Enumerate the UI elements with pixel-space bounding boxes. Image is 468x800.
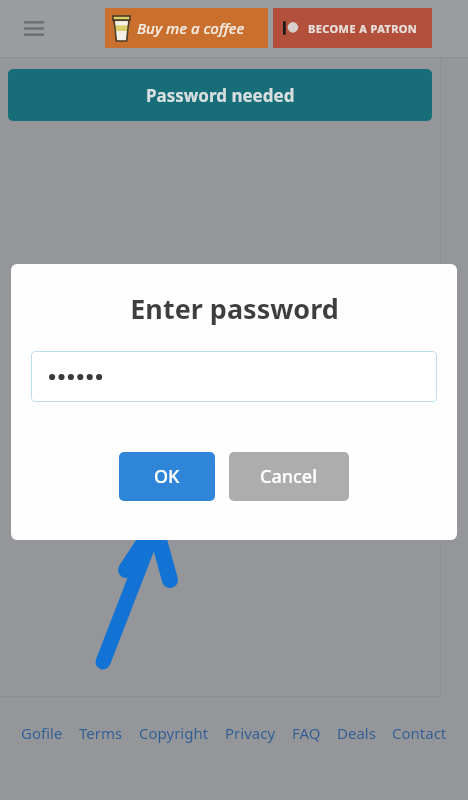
button[interactable]: Contact	[384, 719, 455, 747]
staticText: BECOME A PATRON	[308, 21, 418, 36]
button[interactable]: Cancel	[229, 452, 349, 501]
staticText: Enter password	[130, 290, 339, 327]
staticText: Copyright	[139, 723, 209, 743]
staticText: Password needed	[146, 84, 295, 107]
button[interactable]: Buy me a coffee	[105, 8, 268, 48]
staticText: Deals	[337, 723, 376, 743]
button[interactable]: BECOME A PATRON	[273, 8, 432, 48]
button[interactable]: Copyright	[131, 719, 217, 747]
button[interactable]: Privacy	[217, 719, 284, 747]
button[interactable]: Terms	[71, 719, 131, 747]
staticText: FAQ	[292, 723, 321, 743]
button[interactable]: Deals	[329, 719, 384, 747]
staticText: Gofile	[21, 723, 63, 743]
staticText: Terms	[79, 723, 123, 743]
button[interactable]: Menu	[18, 12, 50, 44]
button[interactable]: OK	[119, 452, 215, 501]
button[interactable]: FAQ	[284, 719, 329, 747]
staticText: Contact	[392, 723, 447, 743]
staticText: Cancel	[260, 464, 318, 489]
staticText: Buy me a coffee	[137, 18, 245, 38]
button[interactable]: Gofile	[13, 719, 71, 747]
staticText: Privacy	[225, 723, 276, 743]
button[interactable]: Password needed	[8, 69, 432, 121]
staticText: OK	[154, 464, 180, 489]
button[interactable]	[31, 351, 437, 402]
